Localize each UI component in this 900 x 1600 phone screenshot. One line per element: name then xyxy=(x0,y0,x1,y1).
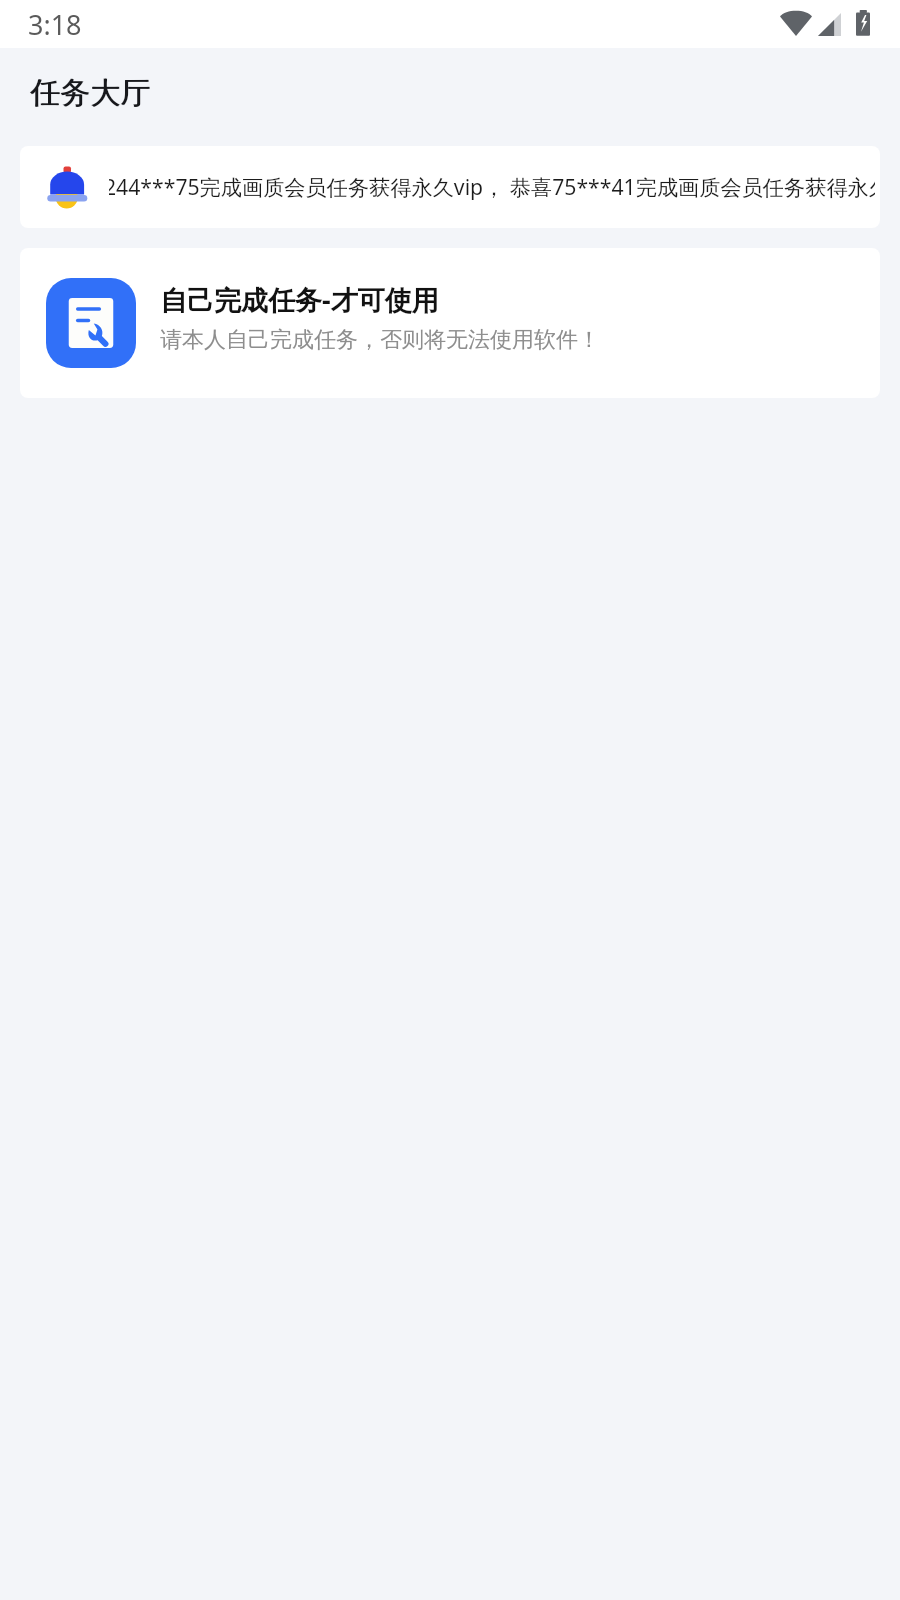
staticText: 任务大厅 xyxy=(31,74,151,112)
staticText: 自己完成任务-才可使用 xyxy=(160,281,439,318)
staticText: 请本人自己完成任务，否则将无法使用软件！ xyxy=(160,326,600,354)
other: Battery charging xyxy=(856,9,870,36)
other: Complete the task yourself xyxy=(46,278,136,368)
staticText: 3:18 xyxy=(28,6,82,43)
staticText: 任务大厅 xyxy=(30,74,150,112)
other: Wi-Fi xyxy=(780,11,812,36)
staticText: 244***75完成画质会员任务获得永久vip， 恭喜75***41完成画质会员… xyxy=(109,172,875,201)
button[interactable]: Complete the task yourself xyxy=(20,248,880,398)
button[interactable]: 244***75完成画质会员任务获得永久vip， 恭喜75***41完成画质会员… xyxy=(20,146,880,228)
